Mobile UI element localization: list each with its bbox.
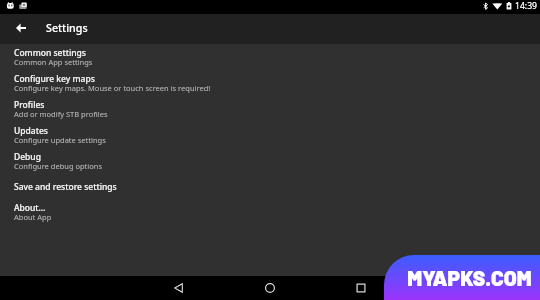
button[interactable]: Back <box>8 14 34 42</box>
button[interactable]: About… <box>0 199 540 225</box>
staticText: About… <box>14 202 46 214</box>
staticText: Configure debug options <box>14 161 103 171</box>
staticText: Updates <box>14 125 48 137</box>
staticText: Add or modify STB profiles <box>14 109 108 119</box>
button[interactable]: Updates <box>0 122 540 148</box>
button[interactable]: Debug <box>0 148 540 174</box>
staticText: Common settings <box>14 47 86 59</box>
staticText: Common App settings <box>14 57 93 67</box>
staticText: Profiles <box>14 99 45 111</box>
button[interactable]: Common settings <box>0 44 540 70</box>
button[interactable]: Save and restore settings <box>0 175 540 196</box>
staticText: Configure key maps <box>14 73 95 85</box>
staticText: Settings <box>46 21 88 36</box>
staticText: 14:39 <box>515 0 537 12</box>
staticText: Configure update settings <box>14 135 106 145</box>
staticText: MYAPKS.COM <box>407 265 532 290</box>
staticText: Configure key maps. Mouse or touch scree… <box>14 83 211 93</box>
staticText: Save and restore settings <box>14 181 117 193</box>
button[interactable]: Recent apps <box>347 276 375 300</box>
staticText: About App <box>14 212 52 222</box>
button[interactable]: Home <box>256 276 284 300</box>
button[interactable]: Configure key maps <box>0 70 540 96</box>
staticText: Debug <box>14 151 41 163</box>
button[interactable]: MYAPKS.COM <box>384 255 540 300</box>
button[interactable]: Back <box>165 276 193 300</box>
button[interactable]: Profiles <box>0 96 540 122</box>
